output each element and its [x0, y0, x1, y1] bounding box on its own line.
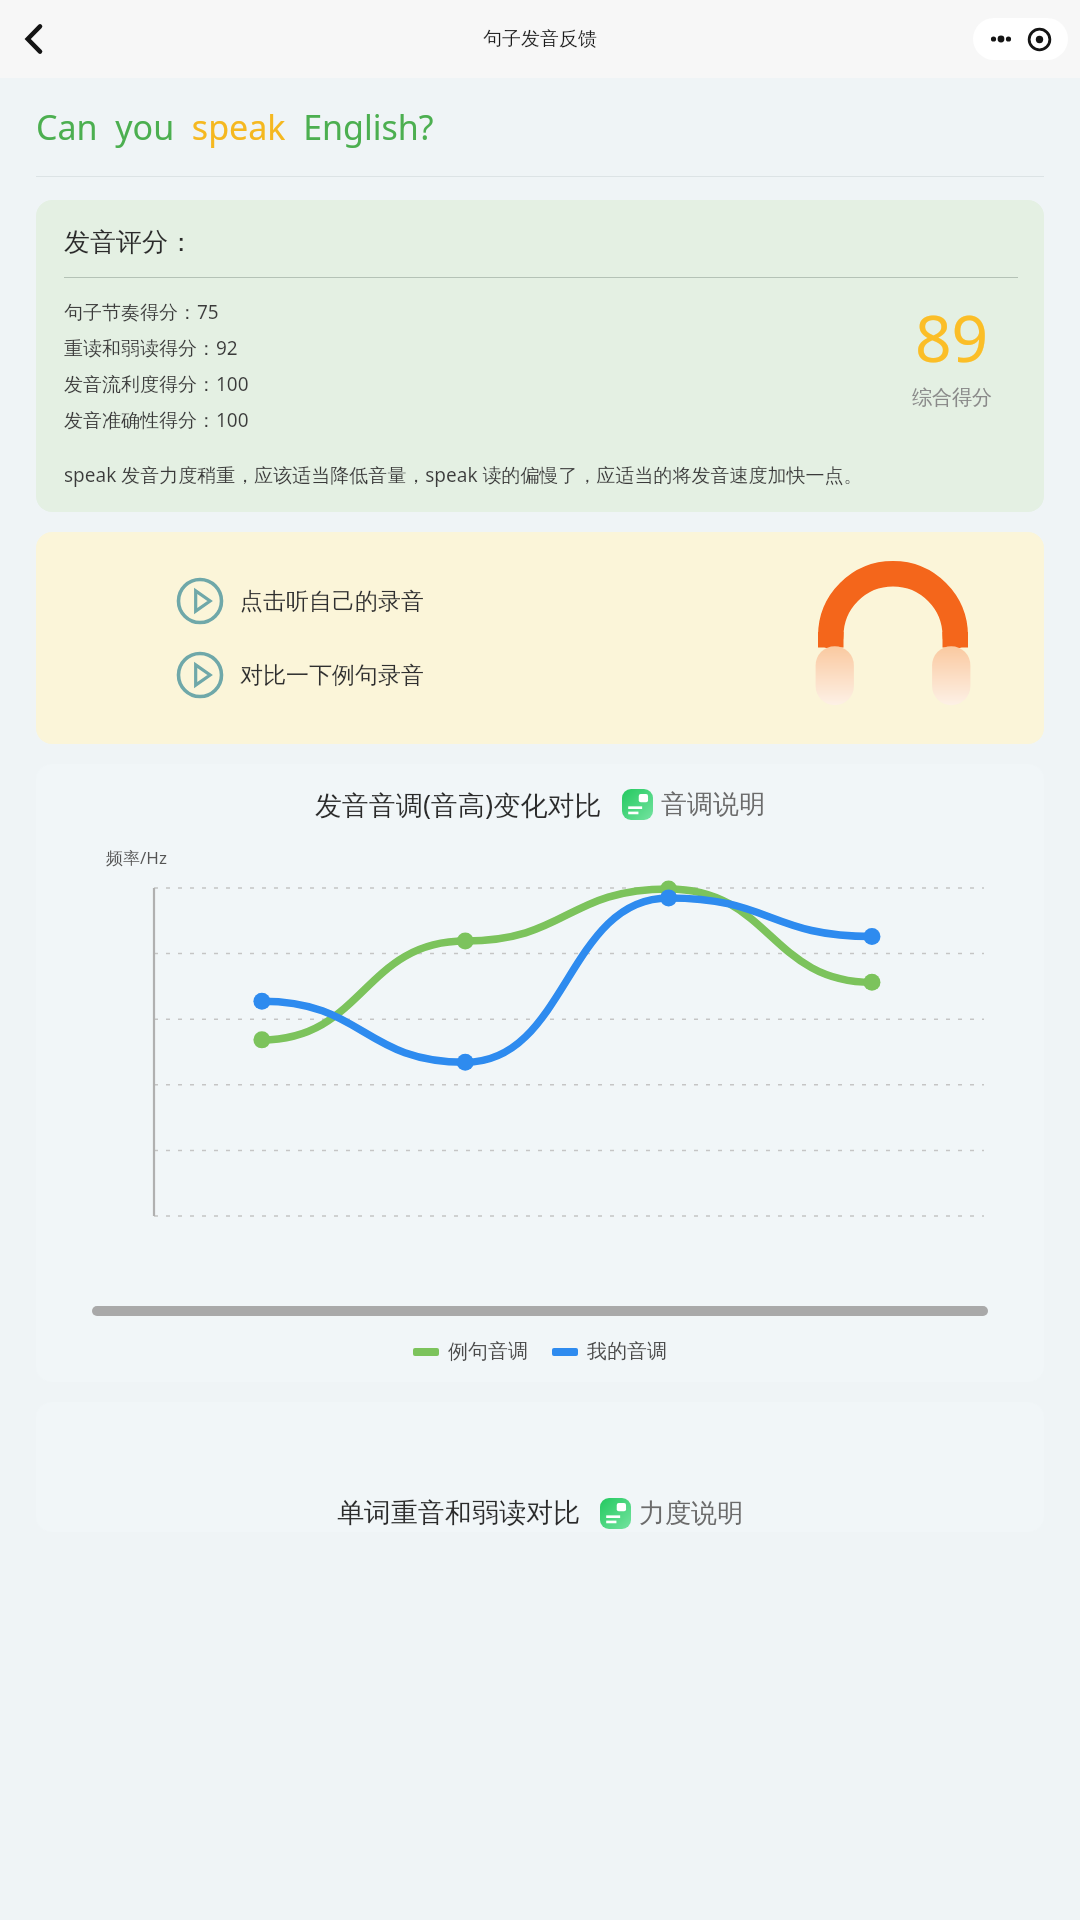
staticText: 89	[915, 294, 989, 381]
button[interactable]: More options and close	[973, 18, 1068, 60]
staticText: 单词重音和弱读对比	[337, 1496, 580, 1530]
staticText: 点击听自己的录音	[240, 587, 424, 616]
staticText: 发音评分：	[64, 226, 194, 259]
staticText: 句子节奏得分：75	[64, 299, 219, 325]
button[interactable]: 点击听自己的录音	[176, 577, 424, 625]
staticText: 频率/Hz	[106, 846, 167, 869]
staticText: 发音准确性得分：100	[64, 407, 249, 433]
staticText: 综合得分	[912, 385, 992, 410]
staticText: 句子发音反馈	[483, 27, 597, 51]
button[interactable]: 我的音调	[552, 1339, 667, 1364]
button[interactable]: 发音评分：	[36, 200, 1044, 512]
staticText: 我的音调	[587, 1339, 667, 1364]
button[interactable]: 力度说明	[600, 1497, 743, 1530]
button[interactable]: 例句音调	[413, 1339, 528, 1364]
staticText: speak 发音力度稍重，应该适当降低音量，speak 读的偏慢了，应适当的将发…	[64, 462, 863, 488]
staticText: 音调说明	[661, 788, 765, 821]
staticText: 力度说明	[639, 1497, 743, 1530]
staticText: 对比一下例句录音	[240, 661, 424, 690]
button[interactable]: 音调说明	[622, 788, 765, 821]
staticText: 例句音调	[448, 1339, 528, 1364]
staticText: 发音音调(音高)变化对比	[315, 786, 602, 823]
button[interactable]: Back	[6, 10, 64, 68]
staticText: 重读和弱读得分：92	[64, 335, 238, 361]
button[interactable]: 对比一下例句录音	[176, 651, 424, 699]
staticText: 发音流利度得分：100	[64, 371, 249, 397]
staticText: Can you speak English?	[36, 104, 434, 150]
